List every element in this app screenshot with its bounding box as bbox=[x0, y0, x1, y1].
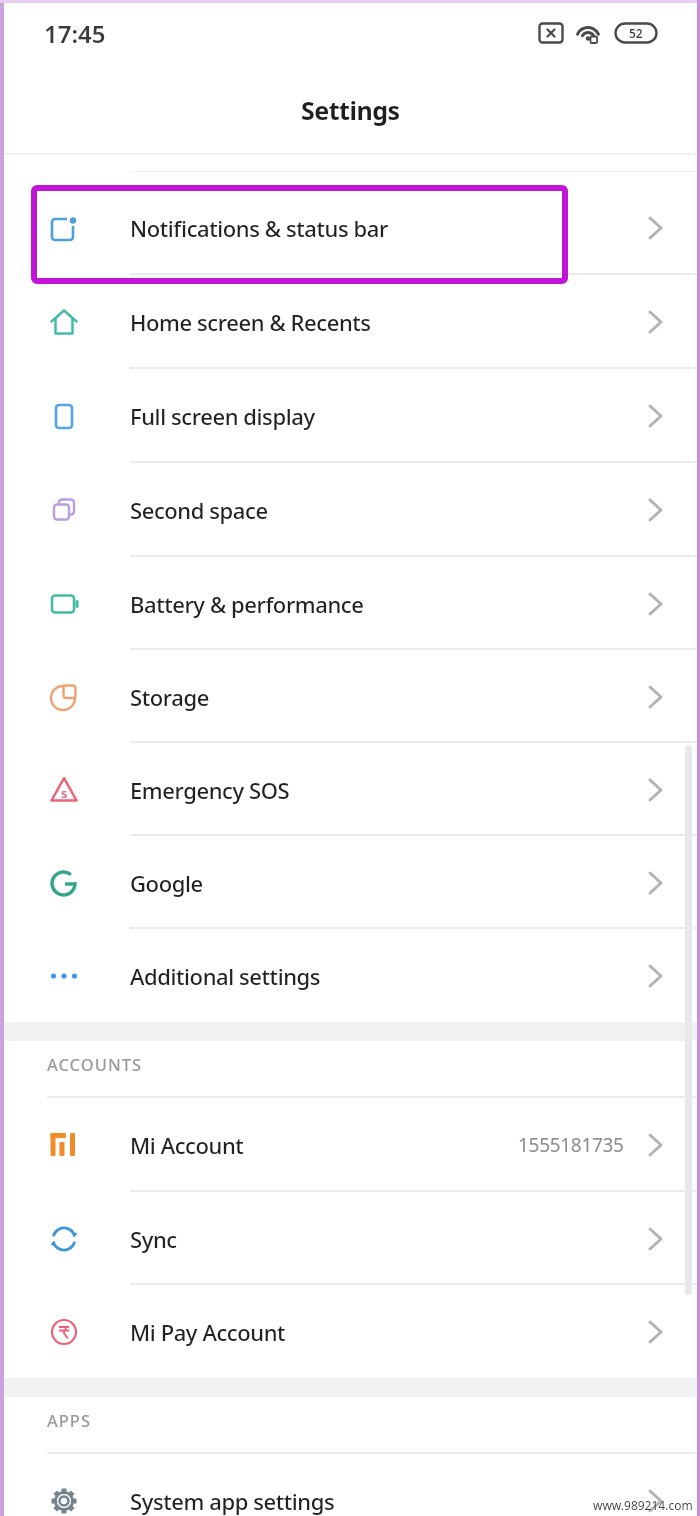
staticText: Battery & performance bbox=[130, 589, 364, 619]
button[interactable]: System app settings bbox=[0, 1454, 700, 1516]
button[interactable]: Notifications & status bar bbox=[0, 181, 700, 275]
staticText: Home screen & Recents bbox=[130, 307, 371, 337]
staticText: Settings bbox=[301, 93, 400, 127]
staticText: 52 bbox=[629, 25, 643, 41]
staticText: Additional settings bbox=[130, 961, 321, 991]
staticText: System app settings bbox=[130, 1486, 335, 1516]
staticText: 1555181735 bbox=[518, 1132, 624, 1158]
button[interactable]: Second space bbox=[0, 463, 700, 557]
staticText: www.989214.com bbox=[593, 1497, 693, 1513]
button[interactable]: Full screen display bbox=[0, 369, 700, 463]
staticText: 17:45 bbox=[44, 17, 106, 50]
staticText: Notifications & status bar bbox=[130, 213, 388, 243]
staticText: ACCOUNTS bbox=[47, 1053, 143, 1075]
button[interactable]: Battery & performance bbox=[0, 557, 700, 650]
staticText: Google bbox=[130, 868, 203, 898]
button[interactable]: Sync bbox=[0, 1192, 700, 1285]
button[interactable]: Mi Pay Account bbox=[0, 1285, 700, 1378]
button[interactable] bbox=[31, 185, 568, 284]
staticText: Full screen display bbox=[130, 401, 315, 431]
button[interactable]: Mi Account bbox=[0, 1098, 700, 1192]
button[interactable]: Additional settings bbox=[0, 929, 700, 1022]
staticText: Mi Pay Account bbox=[130, 1317, 286, 1347]
button[interactable]: Home screen & Recents bbox=[0, 275, 700, 369]
staticText: Storage bbox=[130, 682, 209, 712]
staticText: Sync bbox=[130, 1224, 177, 1254]
staticText: Second space bbox=[130, 495, 268, 525]
staticText: APPS bbox=[47, 1409, 92, 1431]
staticText: Mi Account bbox=[130, 1130, 244, 1160]
button[interactable]: s bbox=[0, 743, 700, 836]
button[interactable]: Storage bbox=[0, 650, 700, 743]
staticText: Emergency SOS bbox=[130, 775, 290, 805]
staticText: s bbox=[61, 784, 68, 802]
button[interactable]: Google bbox=[0, 836, 700, 929]
